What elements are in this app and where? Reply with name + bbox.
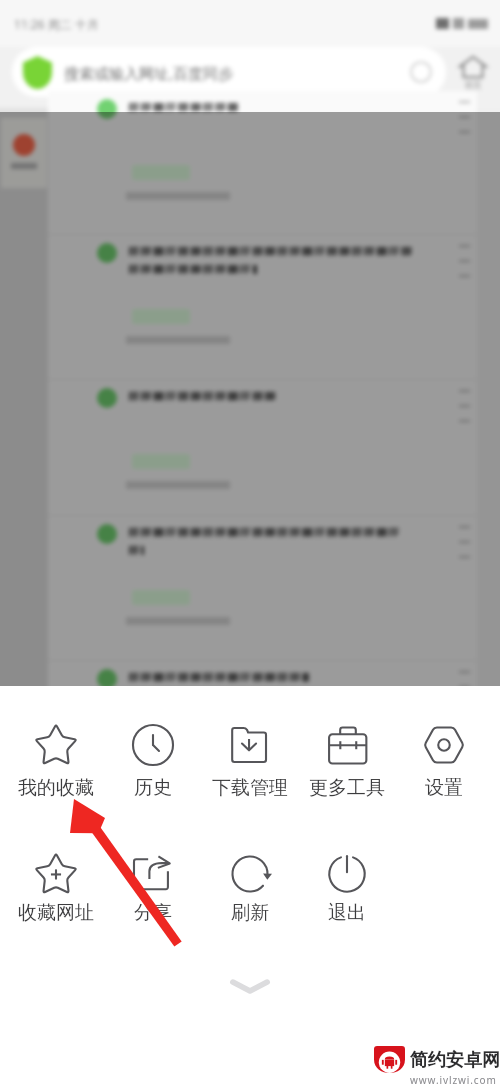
- staticText: 设置: [425, 776, 463, 800]
- button[interactable]: 我的收藏: [7, 723, 104, 800]
- staticText: 刷新: [231, 901, 269, 925]
- button[interactable]: 历史: [104, 723, 201, 800]
- button[interactable]: 下载管理: [201, 723, 298, 800]
- staticText: 搜索或输入网址,百度同步: [64, 63, 234, 83]
- staticText: 退出: [328, 901, 366, 925]
- staticText: 11:26 周二 十月: [14, 16, 99, 32]
- button[interactable]: 收藏网址: [7, 852, 104, 925]
- button[interactable]: [48, 661, 477, 801]
- staticText: 分享: [134, 901, 172, 925]
- staticText: 我的收藏: [18, 776, 94, 800]
- staticText: 下载管理: [212, 776, 288, 800]
- button[interactable]: 设置: [395, 723, 492, 800]
- other: Voice search: [410, 61, 432, 83]
- button[interactable]: 退出: [298, 852, 395, 925]
- button[interactable]: [48, 516, 477, 661]
- staticText: 简约安卓网: [410, 1049, 500, 1072]
- staticText: www.jylzwj.com: [410, 1073, 497, 1084]
- button[interactable]: Collapse menu: [0, 965, 500, 1007]
- staticText: 历史: [134, 776, 172, 800]
- staticText: 首页: [464, 79, 482, 90]
- button[interactable]: 搜索或输入网址,百度同步: [12, 47, 446, 97]
- staticText: 收藏网址: [18, 901, 94, 925]
- staticText: 更多工具: [309, 776, 385, 800]
- button[interactable]: [48, 380, 477, 516]
- button[interactable]: [48, 235, 477, 380]
- button[interactable]: 刷新: [201, 852, 298, 925]
- button[interactable]: 更多工具: [298, 723, 395, 800]
- button[interactable]: [48, 91, 477, 235]
- button[interactable]: Home: [452, 55, 494, 90]
- button[interactable]: 分享: [104, 852, 201, 925]
